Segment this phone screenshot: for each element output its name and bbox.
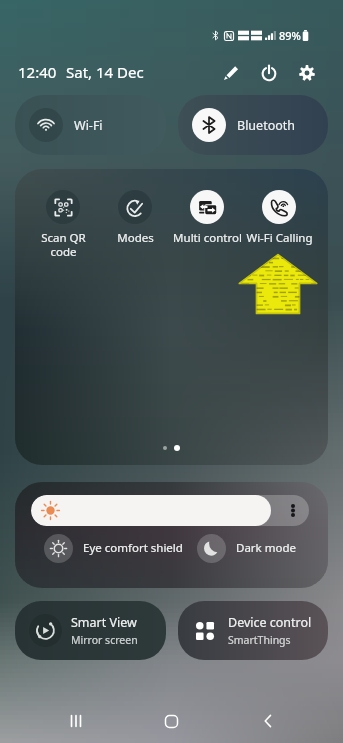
button[interactable]: Wi-Fi Calling (243, 190, 315, 246)
staticText: Scan QR code (41, 230, 86, 259)
button[interactable]: Wi-Fi (15, 95, 166, 155)
button[interactable]: Device control (178, 601, 328, 660)
staticText: Eye comfort shield (83, 540, 183, 556)
button[interactable]: Home (152, 702, 190, 740)
staticText: Bluetooth (237, 117, 296, 134)
staticText: Dark mode (236, 540, 296, 556)
button[interactable]: Power (254, 58, 283, 87)
staticText: Mirror screen (71, 633, 138, 647)
staticText: Smart View (71, 614, 137, 631)
button[interactable]: Back (249, 702, 287, 740)
staticText: 89% (279, 28, 301, 43)
staticText: Modes (117, 230, 154, 246)
button[interactable]: Recents (57, 702, 95, 740)
staticText: Multi control (173, 230, 242, 246)
staticText: Wi-Fi Calling (246, 230, 313, 246)
button[interactable]: Edit quick settings (216, 58, 245, 87)
button[interactable]: Eye comfort shield (34, 526, 189, 570)
staticText: Sat, 14 Dec (66, 62, 144, 82)
staticText: Device control (228, 614, 312, 631)
button[interactable]: Settings (292, 58, 321, 87)
button[interactable]: Scan QR code (27, 190, 99, 259)
button[interactable]: Dark mode (187, 526, 327, 570)
button[interactable]: Modes (99, 190, 171, 246)
button[interactable]: Bluetooth (178, 95, 328, 155)
staticText: SmartThings (228, 633, 291, 647)
button[interactable] (31, 495, 309, 526)
button[interactable]: Smart View (15, 601, 166, 660)
staticText: Wi-Fi (74, 117, 103, 134)
staticText: 12:40 (18, 62, 57, 82)
button[interactable]: Multi control (171, 190, 243, 246)
